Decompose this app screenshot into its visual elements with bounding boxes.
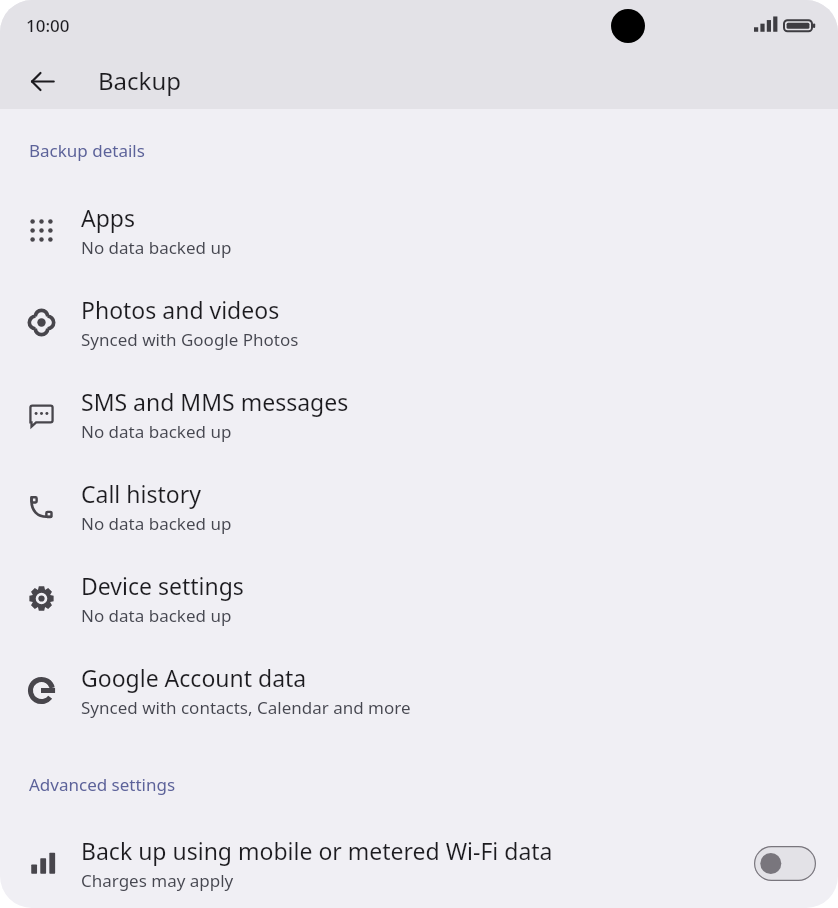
- button[interactable]: Back up using mobile or metered Wi-Fi da…: [0, 818, 838, 908]
- staticText: Synced with contacts, Calendar and more: [81, 696, 411, 719]
- staticText: No data backed up: [81, 512, 232, 535]
- staticText: Charges may apply: [81, 869, 234, 892]
- button[interactable]: Back: [18, 57, 66, 105]
- button[interactable]: Google Account data: [0, 644, 838, 736]
- button[interactable]: SMS and MMS messages: [0, 368, 838, 460]
- staticText: Call history: [81, 478, 201, 509]
- staticText: Photos and videos: [81, 294, 280, 325]
- button[interactable]: Back up using mobile or metered Wi-Fi da…: [754, 846, 816, 881]
- button[interactable]: Device settings: [0, 552, 838, 644]
- button[interactable]: Photos and videos: [0, 276, 838, 368]
- staticText: Backup details: [29, 139, 145, 162]
- staticText: No data backed up: [81, 604, 232, 627]
- staticText: 10:00: [26, 14, 70, 37]
- staticText: Synced with Google Photos: [81, 328, 299, 351]
- staticText: Google Account data: [81, 662, 307, 693]
- staticText: Back up using mobile or metered Wi-Fi da…: [81, 835, 553, 866]
- button[interactable]: Apps: [0, 184, 838, 276]
- staticText: SMS and MMS messages: [81, 386, 349, 417]
- staticText: Apps: [81, 202, 136, 233]
- staticText: Device settings: [81, 570, 244, 601]
- staticText: Advanced settings: [29, 773, 176, 796]
- staticText: Backup: [98, 64, 181, 97]
- button[interactable]: Call history: [0, 460, 838, 552]
- staticText: No data backed up: [81, 420, 232, 443]
- staticText: No data backed up: [81, 236, 232, 259]
